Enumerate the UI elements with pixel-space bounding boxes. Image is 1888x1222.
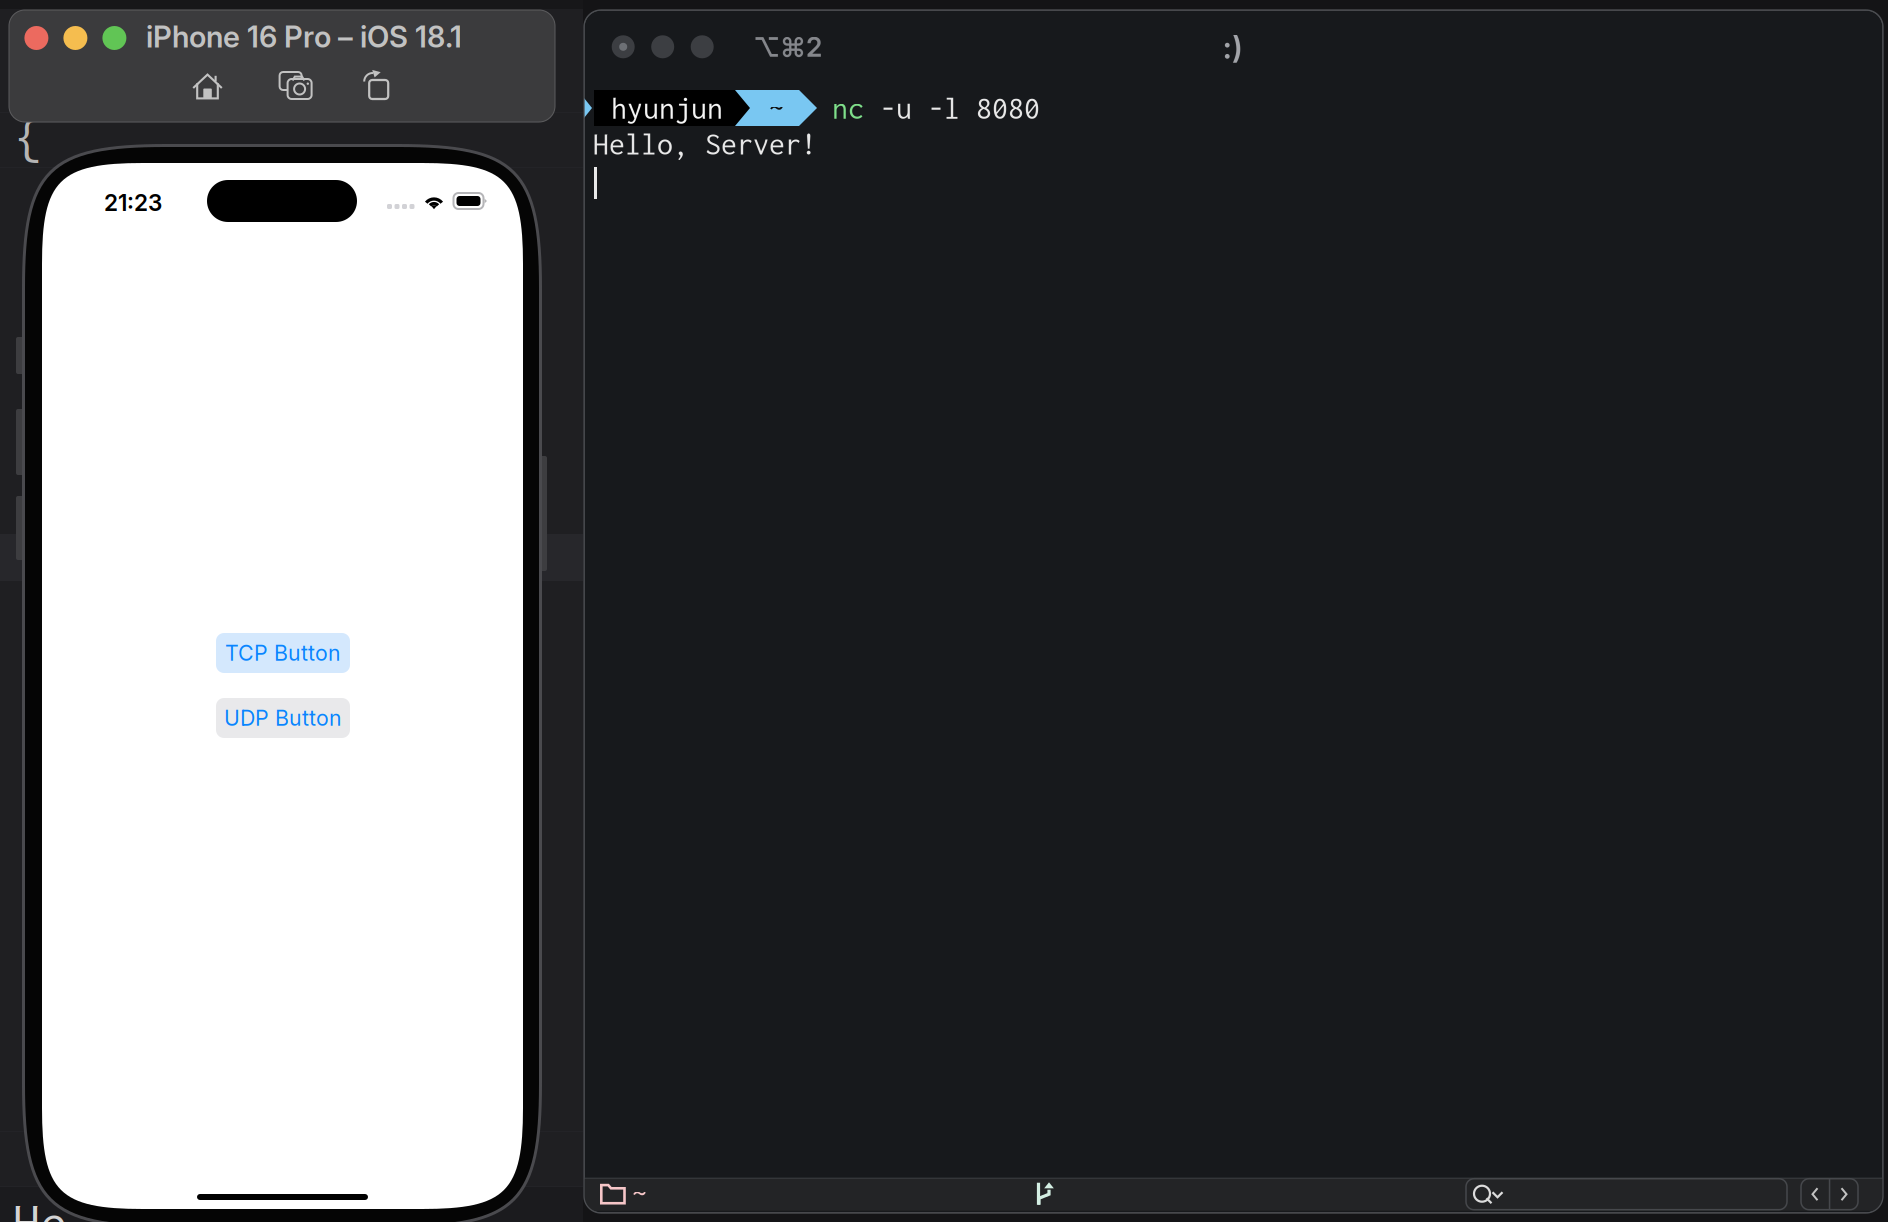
staticText: iPhone 16 Pro – iOS 18.1 [146, 19, 462, 54]
staticText: -u -l 8080 [864, 91, 1040, 125]
button[interactable]: Previous result [1801, 1179, 1829, 1210]
button[interactable]: TCP Button [216, 633, 350, 673]
button[interactable]: UDP Button [216, 698, 350, 738]
staticText: 21:23 [104, 189, 162, 216]
staticText: He [13, 1194, 67, 1222]
staticText: ⌥⌘2 [753, 31, 822, 63]
button[interactable]: Rotate [360, 70, 388, 99]
staticText: nc [832, 91, 864, 125]
staticText: Hello, Server! [593, 127, 817, 161]
button[interactable]: Zoom [102, 26, 126, 50]
staticText: :) [1223, 29, 1243, 66]
button[interactable]: Next result [1830, 1179, 1858, 1210]
staticText: ~ [631, 1177, 647, 1210]
staticText: ~ [768, 91, 784, 125]
staticText: TCP Button [225, 640, 341, 666]
staticText: { [16, 111, 43, 168]
button[interactable]: Home [192, 72, 223, 100]
button[interactable]: Screenshot [280, 71, 313, 100]
button[interactable]: Minimise [63, 26, 87, 50]
staticText: hyunjun [611, 91, 723, 125]
staticText: UDP Button [224, 705, 342, 731]
button[interactable]: Close [24, 26, 48, 50]
